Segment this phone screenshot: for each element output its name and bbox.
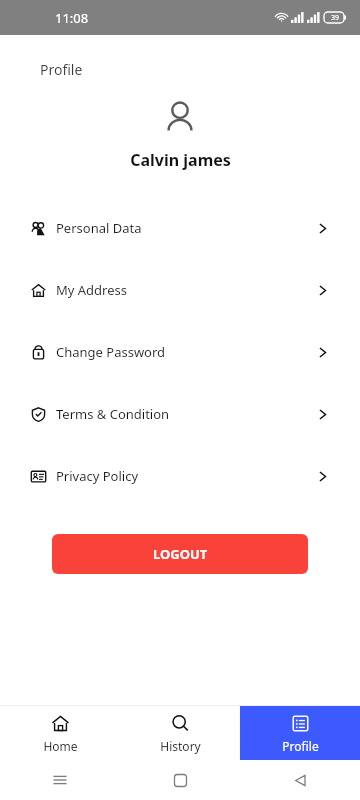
button[interactable]: LOGOUT bbox=[52, 534, 308, 574]
button[interactable]: Privacy Policy bbox=[0, 445, 360, 507]
button[interactable]: Change Password bbox=[0, 321, 360, 383]
button[interactable]: Home bbox=[120, 760, 240, 800]
button[interactable]: History bbox=[120, 706, 240, 760]
staticText: 39 bbox=[331, 13, 340, 23]
button[interactable]: Profile bbox=[240, 706, 360, 760]
staticText: 11:08 bbox=[55, 9, 89, 27]
staticText: History bbox=[160, 738, 201, 754]
staticText: Home bbox=[43, 738, 78, 754]
staticText: My Address bbox=[56, 281, 127, 299]
staticText: Profile bbox=[282, 738, 319, 754]
button[interactable]: Personal Data bbox=[0, 197, 360, 259]
staticText: LOGOUT bbox=[153, 545, 208, 563]
staticText: Personal Data bbox=[56, 219, 142, 237]
staticText: Privacy Policy bbox=[56, 467, 139, 485]
button[interactable]: Back bbox=[240, 760, 360, 800]
staticText: Profile bbox=[40, 60, 83, 79]
button[interactable]: Terms & Condition bbox=[0, 383, 360, 445]
staticText: Calvin james bbox=[130, 149, 231, 171]
staticText: Change Password bbox=[56, 343, 166, 361]
button[interactable]: Recent apps bbox=[0, 760, 120, 800]
staticText: Terms & Condition bbox=[56, 405, 170, 423]
button[interactable]: Home bbox=[0, 706, 120, 760]
button[interactable]: My Address bbox=[0, 259, 360, 321]
